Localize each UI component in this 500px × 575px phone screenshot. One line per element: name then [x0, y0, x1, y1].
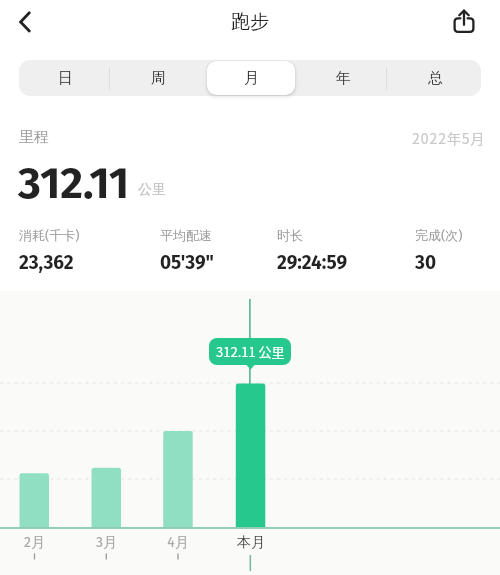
staticText: 05'39"	[160, 251, 214, 274]
button[interactable]: 日	[19, 60, 112, 96]
staticText: 312.11	[18, 157, 130, 210]
staticText: 年	[336, 69, 351, 88]
staticText: 公里	[138, 181, 166, 199]
button[interactable]: 月	[205, 60, 297, 96]
staticText: 周	[151, 69, 166, 88]
staticText: 29:24:59	[277, 251, 348, 274]
button[interactable]: 年	[297, 60, 389, 96]
staticText: 30	[415, 251, 436, 274]
staticText: 里程	[19, 128, 49, 147]
staticText: 3月	[96, 534, 117, 552]
staticText: 2月	[24, 534, 45, 552]
staticText: 23,362	[19, 251, 74, 274]
staticText: 跑步	[231, 10, 269, 34]
staticText: 2022年5月	[412, 128, 486, 148]
staticText: 本月	[237, 534, 265, 552]
staticText: 312.11 公里	[216, 342, 285, 361]
staticText: 月	[244, 69, 259, 88]
staticText: 时长	[277, 227, 303, 243]
staticText: 平均配速	[160, 227, 212, 243]
button[interactable]: 周	[112, 60, 205, 96]
staticText: 总	[428, 69, 443, 88]
staticText: 日	[58, 69, 73, 88]
button[interactable]: 总	[389, 60, 481, 96]
button[interactable]: Share	[446, 4, 482, 40]
staticText: 4月	[167, 534, 189, 552]
staticText: 完成(次)	[415, 227, 463, 243]
button[interactable]: Back	[7, 4, 43, 40]
staticText: 消耗(千卡)	[19, 227, 80, 243]
